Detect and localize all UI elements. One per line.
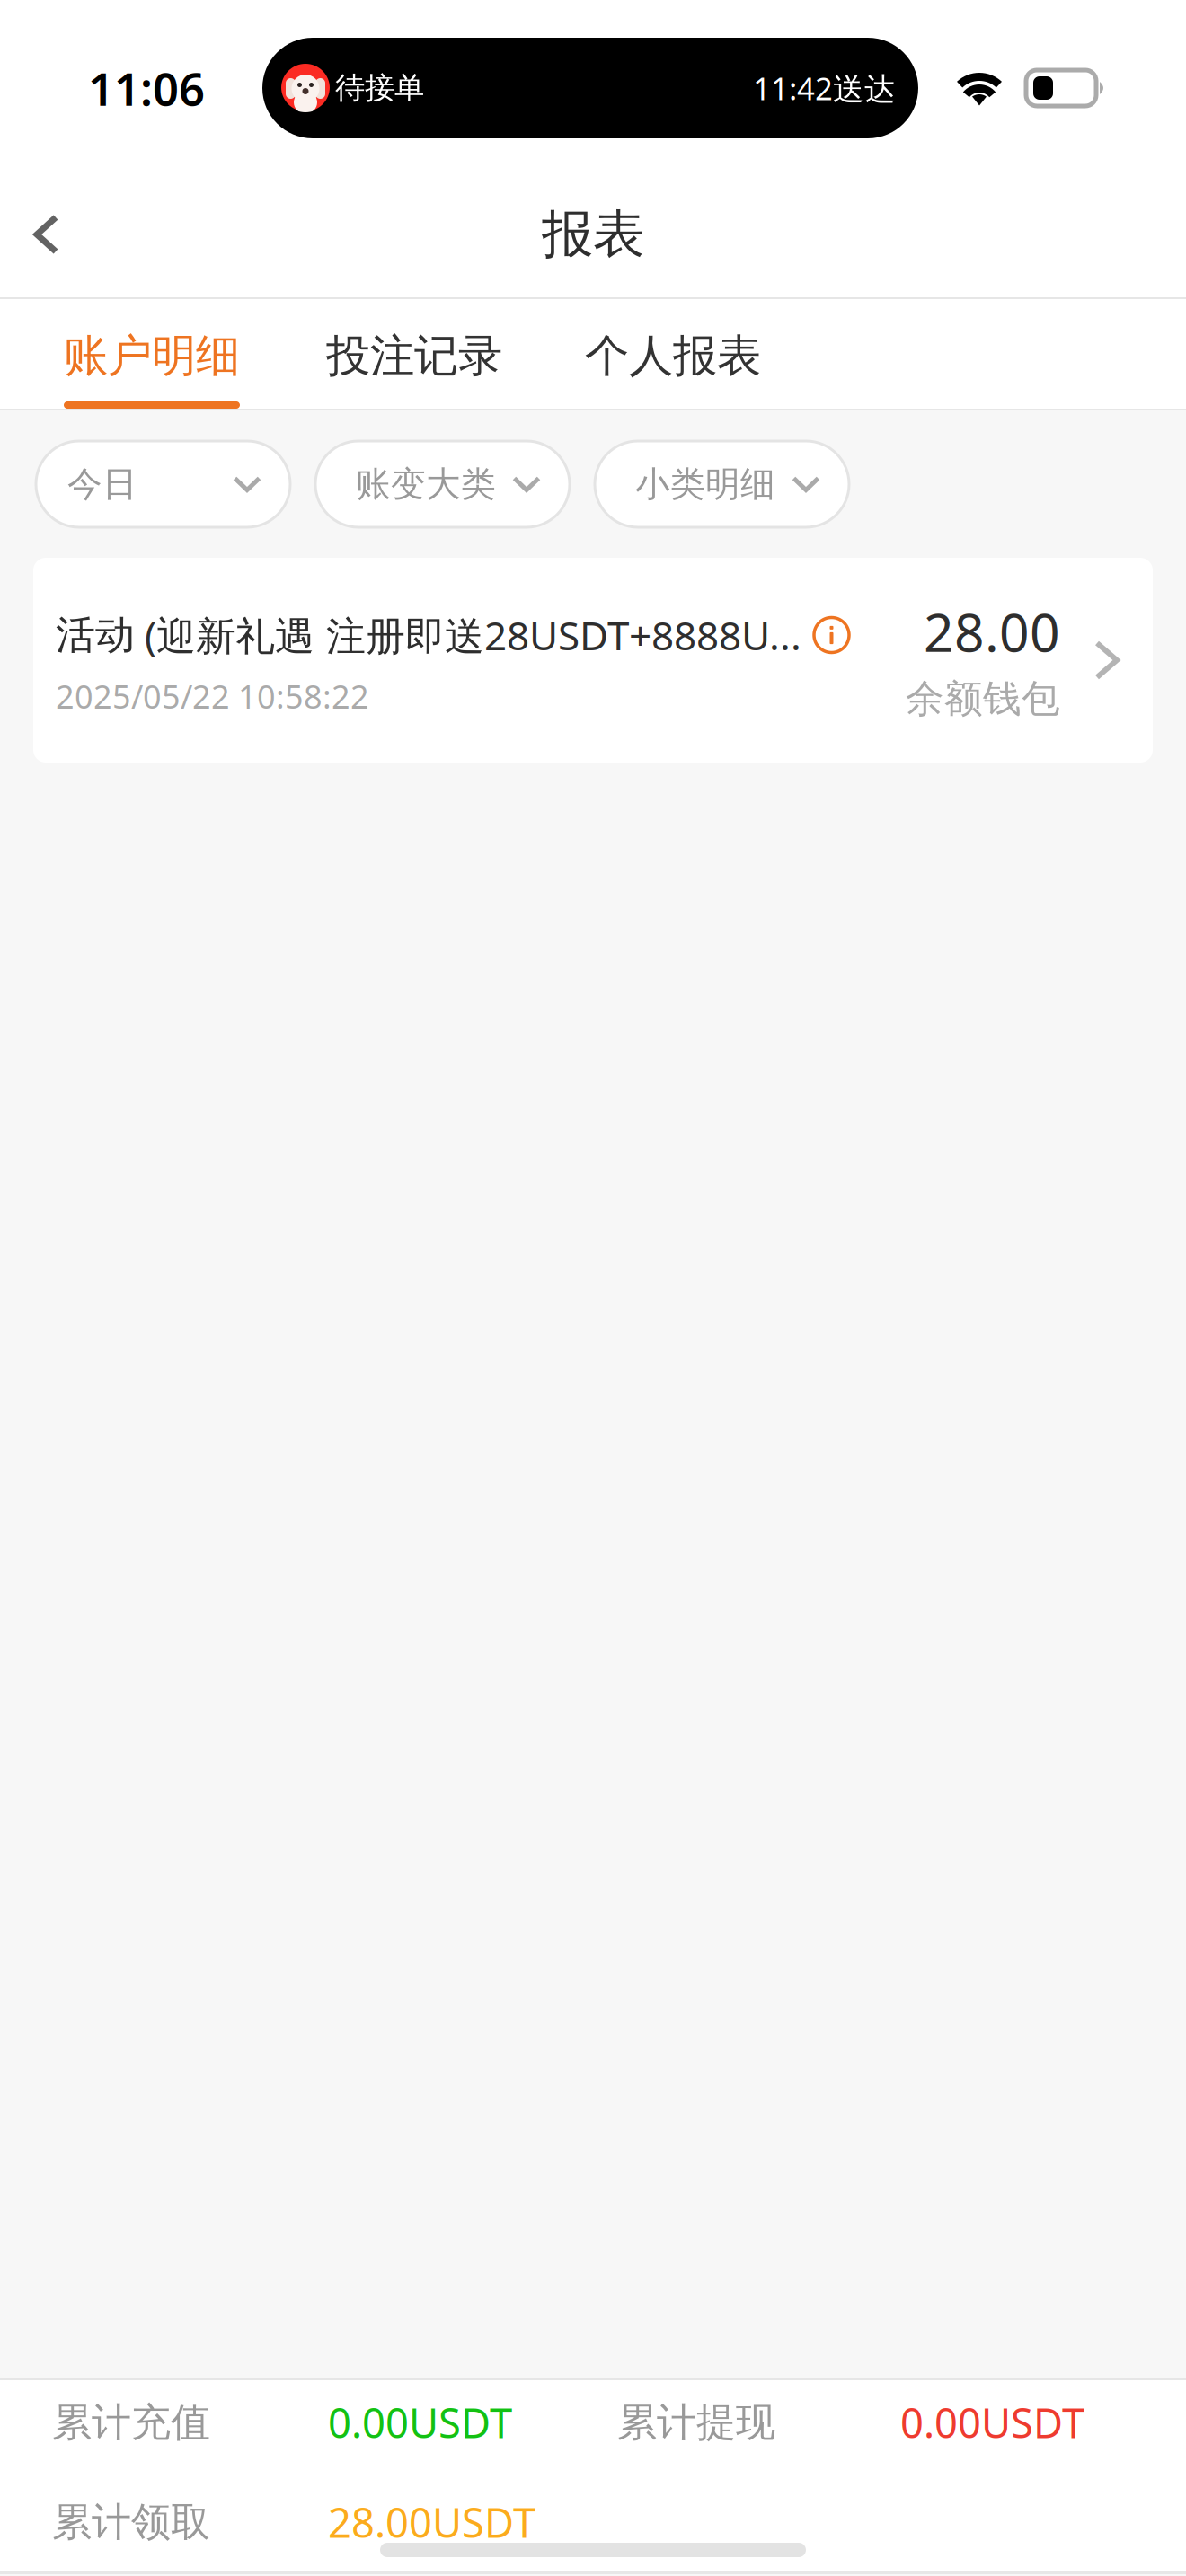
button[interactable]: 账户明细: [64, 299, 240, 410]
button[interactable]: 今日: [36, 441, 290, 527]
staticText: 累计充值: [52, 2398, 210, 2447]
staticText: 小类明细: [635, 463, 775, 505]
staticText: 今日: [67, 463, 137, 505]
staticText: 0.00USDT: [900, 2395, 1084, 2449]
button[interactable]: 返回: [0, 181, 93, 288]
staticText: 28.00USDT: [328, 2495, 535, 2549]
staticText: 账变大类: [356, 463, 496, 505]
staticText: 11:42送达: [753, 67, 896, 109]
button[interactable]: 小类明细: [595, 441, 849, 527]
button[interactable]: 账变大类: [315, 441, 570, 527]
staticText: 累计提现: [617, 2398, 775, 2447]
staticText: (迎新礼遇 注册即送28USDT+8888U...: [135, 609, 801, 661]
button[interactable]: 活动: [33, 558, 1153, 763]
staticText: 28.00: [924, 596, 1060, 666]
staticText: 累计领取: [52, 2498, 210, 2546]
staticText: 个人报表: [585, 329, 761, 383]
staticText: 2025/05/22 10:58:22: [56, 675, 369, 718]
staticText: 余额钱包: [906, 675, 1060, 722]
staticText: 投注记录: [326, 329, 502, 383]
button[interactable]: 投注记录: [326, 299, 502, 410]
button[interactable]: 个人报表: [585, 299, 761, 410]
staticText: 报表: [542, 203, 644, 266]
staticText: 账户明细: [64, 329, 240, 383]
staticText: 11:06: [88, 58, 205, 118]
staticText: 0.00USDT: [328, 2395, 512, 2449]
staticText: 活动: [56, 611, 135, 659]
staticText: 待接单: [335, 70, 424, 106]
